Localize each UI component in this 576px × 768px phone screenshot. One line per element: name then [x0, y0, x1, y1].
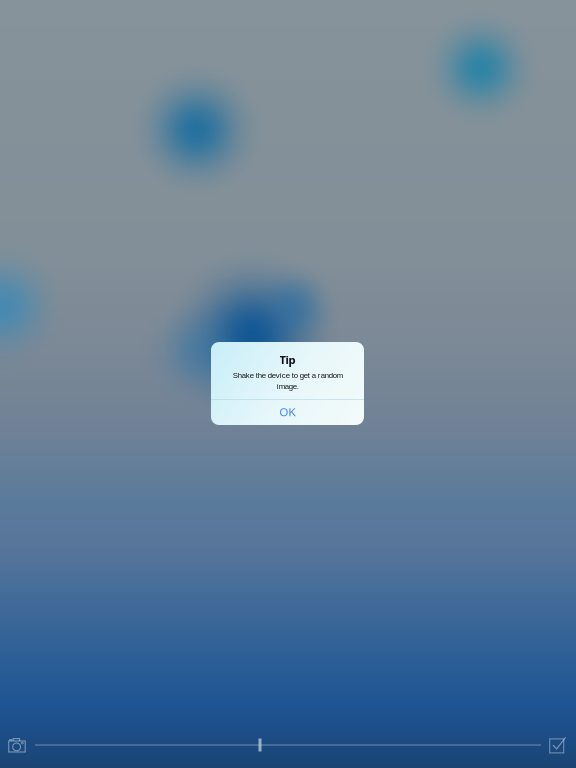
staticText: Shake the device to get a random image. [232, 371, 342, 391]
staticText: OK [279, 406, 295, 419]
staticText: Tip [279, 352, 295, 367]
button[interactable]: Select [541, 728, 575, 762]
button[interactable]: OK [211, 400, 364, 425]
button[interactable]: Camera [0, 728, 34, 762]
